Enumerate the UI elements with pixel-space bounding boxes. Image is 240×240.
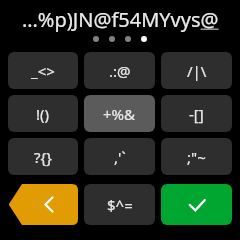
button[interactable]: $^= [84,184,155,225]
button[interactable]: _<> [8,52,78,89]
staticText: _<> [31,61,55,81]
button[interactable]: +%& [84,95,155,132]
staticText: …%p)JN@f54MYvys@ [22,6,219,32]
button[interactable]: ?{} [8,138,78,175]
button[interactable]: !() [8,95,78,132]
button[interactable]: ;"~ [161,138,232,175]
staticText: $^= [107,195,133,215]
button[interactable]: Done [161,184,232,225]
button[interactable]: /|\ [161,52,232,89]
button[interactable]: ,'` [84,138,155,175]
staticText: ?{} [34,147,52,167]
staticText: ;"~ [187,147,206,167]
button[interactable]: Backspace [8,184,78,225]
staticText: ,'` [114,147,126,167]
staticText: !() [36,104,50,124]
button[interactable]: -[] [161,95,232,132]
staticText: -[] [189,104,204,124]
staticText: /|\ [187,61,207,81]
staticText: .:@ [109,61,131,81]
button[interactable]: .:@ [84,52,155,89]
staticText: +%& [103,104,136,124]
